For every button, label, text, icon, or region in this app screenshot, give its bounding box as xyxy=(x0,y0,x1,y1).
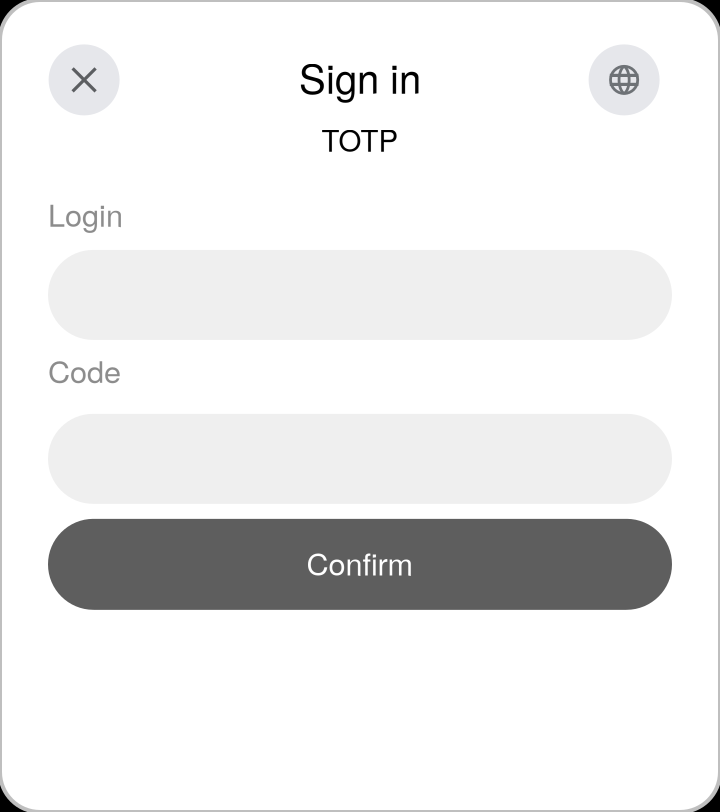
staticText: Code xyxy=(48,348,121,392)
button[interactable]: Change language xyxy=(589,44,660,115)
button[interactable]: Close xyxy=(49,44,120,115)
button[interactable]: Confirm xyxy=(48,519,672,610)
staticText: TOTP xyxy=(321,118,398,160)
staticText: Confirm xyxy=(306,540,413,584)
staticText: Sign in xyxy=(299,48,421,105)
staticText: Login xyxy=(48,191,123,235)
